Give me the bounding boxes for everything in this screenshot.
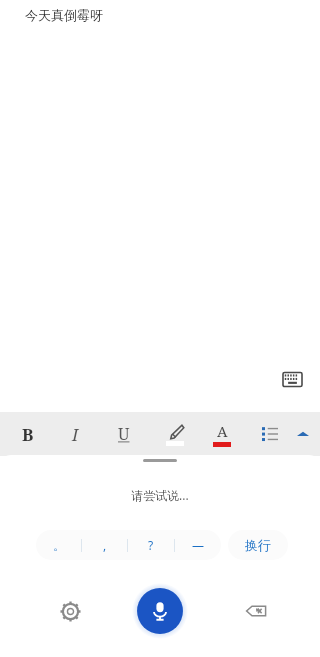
button[interactable]: 删除	[242, 597, 270, 625]
staticText: I	[72, 423, 79, 446]
button[interactable]: 荧光笔	[158, 417, 192, 451]
button[interactable]: 。	[36, 530, 81, 560]
button[interactable]: 换行	[228, 530, 288, 560]
staticText: B	[22, 423, 34, 446]
button[interactable]: 切换键盘	[272, 359, 312, 399]
staticText: A	[217, 421, 228, 441]
staticText: 换行	[245, 537, 271, 553]
button[interactable]: 加粗	[11, 417, 45, 451]
button[interactable]: 语音输入	[132, 583, 188, 639]
staticText: U	[118, 423, 130, 445]
staticText: 请尝试说...	[131, 487, 189, 503]
button[interactable]: 斜体	[58, 417, 92, 451]
button[interactable]: ?	[128, 530, 174, 560]
button[interactable]: 收起	[286, 417, 320, 451]
button[interactable]: 下划线	[107, 417, 141, 451]
staticText: ,	[103, 537, 107, 553]
staticText: 今天真倒霉呀	[25, 7, 103, 23]
staticText: —	[192, 537, 205, 553]
staticText: ?	[148, 537, 154, 553]
button[interactable]: ,	[82, 530, 127, 560]
button[interactable]: 列表	[253, 417, 287, 451]
button[interactable]: 设置	[56, 597, 84, 625]
button[interactable]: —	[175, 530, 221, 560]
button[interactable]: 文字颜色	[205, 417, 239, 451]
staticText: 。	[53, 538, 65, 553]
